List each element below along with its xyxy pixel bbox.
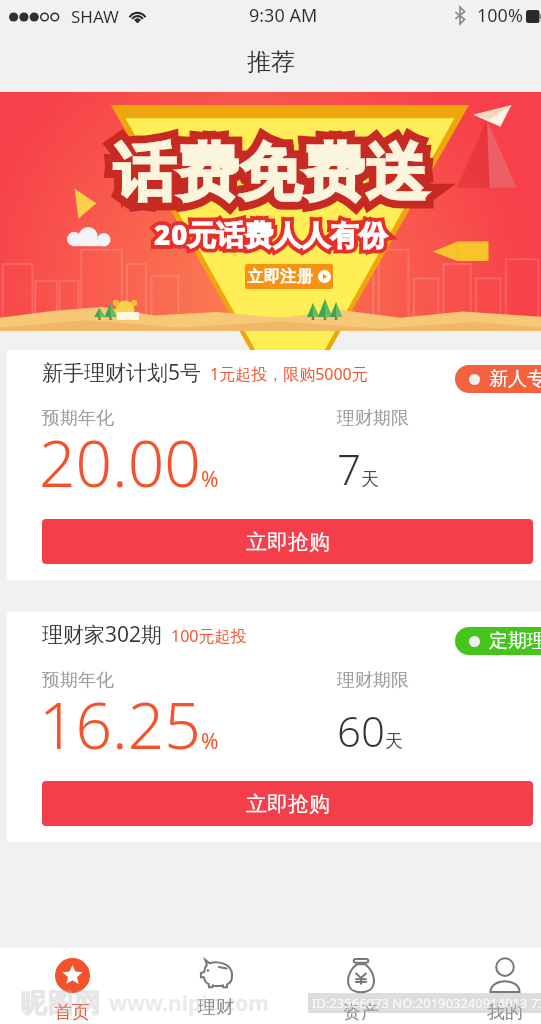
staticText: 60 bbox=[337, 702, 385, 759]
staticText: 20.00 bbox=[39, 419, 201, 506]
staticText: www.nipic.com bbox=[109, 989, 269, 1018]
button[interactable]: 新手理财计划5号 bbox=[7, 350, 541, 580]
staticText: 20元话费人人有份 bbox=[154, 215, 388, 253]
staticText: 推荐 bbox=[247, 47, 295, 77]
button[interactable]: 理财 bbox=[154, 948, 278, 1024]
button[interactable]: 立即抢购 bbox=[42, 781, 533, 826]
staticText: 资产 bbox=[343, 1001, 379, 1024]
button[interactable]: 首页 bbox=[10, 948, 134, 1024]
button[interactable]: 定期理财 bbox=[455, 627, 541, 655]
staticText: 话费免费送 bbox=[113, 134, 428, 212]
staticText: 我的 bbox=[487, 1001, 523, 1024]
button[interactable]: 我的 bbox=[443, 948, 541, 1024]
staticText: 首页 bbox=[54, 1001, 90, 1024]
button[interactable]: 立即抢购 bbox=[42, 519, 533, 564]
staticText: 立即抢购 bbox=[246, 529, 330, 555]
staticText: 理财期限 bbox=[337, 407, 409, 430]
staticText: 天 bbox=[385, 730, 403, 753]
button[interactable]: 理财家302期 bbox=[7, 612, 541, 842]
staticText: 100元起投 bbox=[171, 625, 247, 647]
staticText: ID:23566073 NO:201903240914013 73080 bbox=[312, 994, 541, 1012]
staticText: SHAW bbox=[71, 5, 119, 28]
staticText: 100% bbox=[477, 3, 523, 28]
staticText: 天 bbox=[361, 468, 379, 491]
button[interactable]: 资产 bbox=[299, 948, 423, 1024]
staticText: 理财 bbox=[198, 996, 234, 1019]
staticText: 1元起投，限购5000元 bbox=[210, 363, 368, 385]
staticText: 理财期限 bbox=[337, 669, 409, 692]
staticText: 预期年化 bbox=[42, 669, 114, 692]
button[interactable]: 新人专享 bbox=[455, 365, 541, 393]
staticText: 理财家302期 bbox=[42, 620, 163, 649]
staticText: 定期理财 bbox=[489, 629, 541, 653]
button[interactable]: 立即注册 bbox=[245, 264, 333, 289]
staticText: % bbox=[201, 727, 219, 756]
staticText: 立即抢购 bbox=[246, 791, 330, 817]
staticText: 预期年化 bbox=[42, 407, 114, 430]
staticText: 昵图网 bbox=[20, 987, 101, 1020]
staticText: 立即注册 bbox=[247, 267, 313, 287]
staticText: 16.25 bbox=[39, 681, 201, 768]
staticText: 20元话费人人有份 bbox=[154, 215, 388, 253]
staticText: 9:30 AM bbox=[249, 3, 318, 28]
staticText: 7 bbox=[337, 440, 361, 497]
staticText: 新手理财计划5号 bbox=[42, 358, 202, 387]
staticText: % bbox=[201, 465, 219, 494]
staticText: 新人专享 bbox=[489, 367, 541, 391]
staticText: 话费免费送 bbox=[113, 134, 428, 212]
